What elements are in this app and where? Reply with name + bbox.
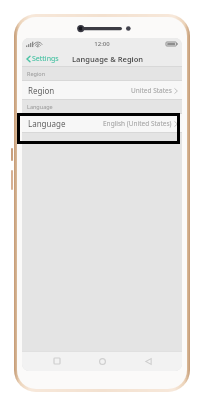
staticText: Language [27,103,53,110]
button[interactable]: Recent apps [46,352,68,370]
staticText: Region [27,70,46,77]
staticText: Language [28,118,66,129]
staticText: 12:00 [94,40,110,48]
staticText: Settings [32,54,59,64]
button[interactable]: Settings [24,52,61,66]
staticText: Language & Region [72,54,144,64]
staticText: Region [28,85,55,96]
staticText: English (United States) [103,119,172,128]
button[interactable]: Language [22,113,182,133]
button[interactable]: Home [91,352,113,370]
button[interactable]: Back [137,352,159,370]
staticText: United States [131,86,172,95]
button[interactable]: Region [22,80,182,100]
